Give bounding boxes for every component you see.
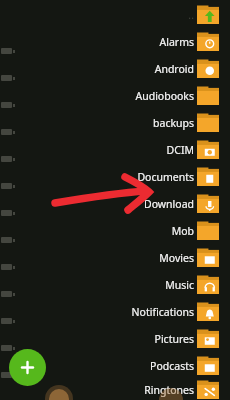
button[interactable]: Alarms <box>0 28 230 55</box>
staticText: .. <box>188 8 194 22</box>
button[interactable]: Documents <box>0 163 230 190</box>
staticText: Download <box>144 197 194 211</box>
button[interactable]: DCIM <box>0 136 230 163</box>
button[interactable]: Music <box>0 271 230 298</box>
button[interactable]: Download <box>0 190 230 217</box>
staticText: Movies <box>159 251 194 265</box>
staticText: Mob <box>171 224 194 238</box>
staticText: Android <box>154 62 194 76</box>
button[interactable]: Notifications <box>0 298 230 325</box>
staticText: Podcasts <box>150 359 194 373</box>
button[interactable]: Ringtones <box>0 379 230 400</box>
button[interactable]: Podcasts <box>0 352 230 379</box>
staticText: Music <box>165 278 194 292</box>
button[interactable]: backups <box>0 109 230 136</box>
staticText: Pictures <box>154 332 194 346</box>
staticText: Ringtones <box>144 383 194 397</box>
staticText: backups <box>153 116 194 130</box>
staticText: Alarms <box>159 35 194 49</box>
button[interactable]: .. <box>0 1 230 28</box>
button[interactable]: Android <box>0 55 230 82</box>
staticText: Documents <box>137 170 194 184</box>
staticText: Audiobooks <box>135 89 194 103</box>
button[interactable]: Movies <box>0 244 230 271</box>
staticText: Notifications <box>131 305 194 319</box>
button[interactable]: Audiobooks <box>0 82 230 109</box>
button[interactable]: Pictures <box>0 325 230 352</box>
button[interactable]: Mob <box>0 217 230 244</box>
staticText: DCIM <box>166 143 194 157</box>
button[interactable]: Add <box>9 349 46 386</box>
